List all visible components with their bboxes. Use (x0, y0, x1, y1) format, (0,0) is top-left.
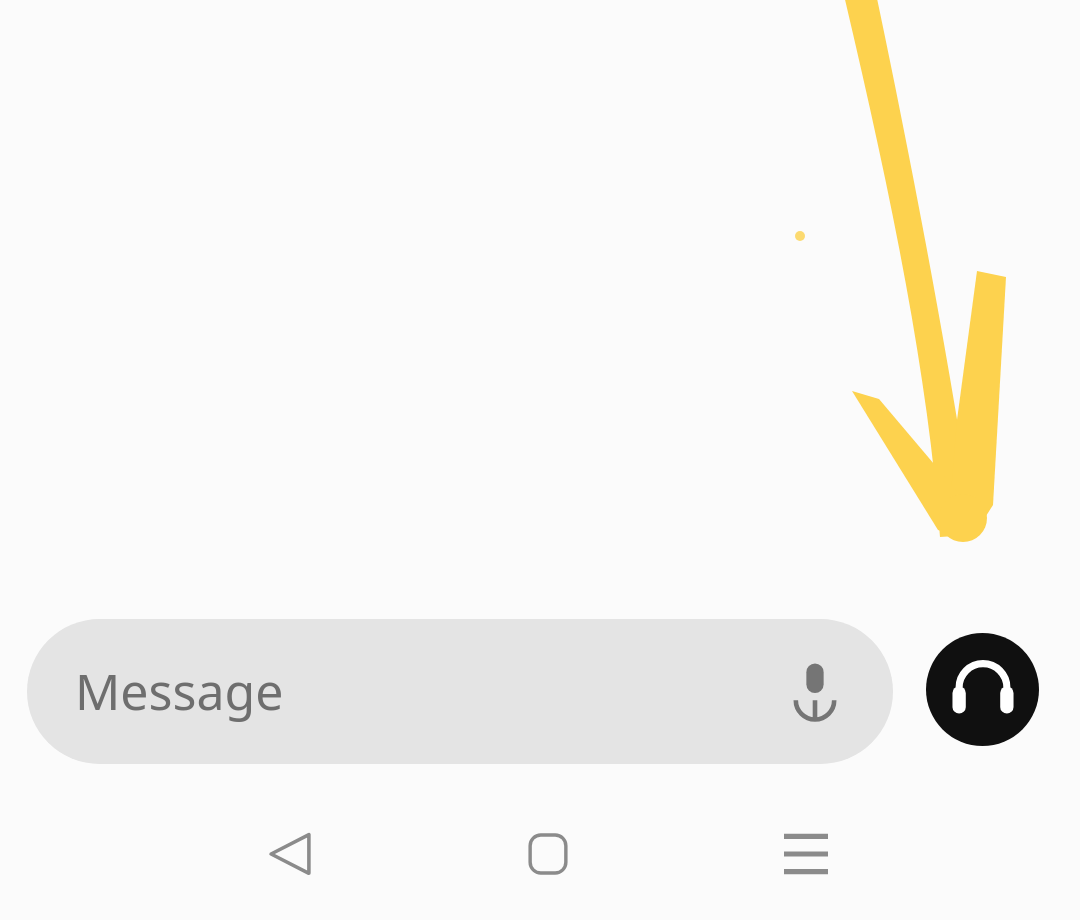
staticText: Message (75, 657, 284, 725)
button[interactable]: Voice input (776, 653, 854, 731)
button[interactable]: Message (27, 619, 893, 764)
button[interactable]: Home (510, 816, 586, 892)
button[interactable]: Headphones (926, 633, 1039, 746)
button[interactable]: Back (252, 816, 328, 892)
button[interactable]: Recent apps (768, 816, 844, 892)
